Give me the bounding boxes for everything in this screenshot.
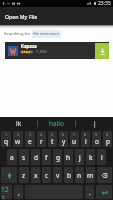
staticText: j: [79, 153, 81, 162]
staticText: 7: [73, 132, 76, 137]
staticText: ,: [18, 188, 20, 197]
staticText: h: [66, 153, 71, 162]
staticText: t: [51, 137, 54, 146]
staticText: l: [101, 153, 103, 162]
staticText: Open My File: [5, 13, 38, 20]
staticText: z: [22, 171, 26, 180]
staticText: m: [87, 171, 94, 180]
staticText: 123: [1, 185, 12, 199]
staticText: 3: [29, 132, 32, 137]
button[interactable]: h: [64, 149, 73, 165]
staticText: r: [40, 137, 43, 146]
button[interactable]: 4: [37, 131, 46, 147]
staticText: n: [77, 171, 82, 180]
button[interactable]: Enter: [96, 185, 112, 199]
button[interactable]: 7: [70, 131, 79, 147]
button[interactable]: Shift: [1, 167, 17, 183]
staticText: o: [95, 137, 99, 146]
staticText: .: [89, 188, 91, 197]
button[interactable]: a: [7, 149, 17, 165]
staticText: v: [56, 171, 60, 180]
button[interactable]: 9: [92, 131, 101, 147]
button[interactable]: f: [42, 149, 51, 165]
staticText: 1: [5, 132, 8, 137]
staticText: (1,096): [36, 49, 47, 54]
staticText: c: [45, 171, 49, 180]
staticText: 6: [62, 132, 65, 137]
button[interactable]: v: [53, 167, 62, 183]
button[interactable]: 0: [103, 131, 112, 147]
button[interactable]: Install: [95, 43, 109, 59]
staticText: d: [34, 153, 38, 162]
button[interactable]: z: [19, 167, 29, 183]
staticText: 9: [95, 132, 98, 137]
button[interactable]: 3: [25, 131, 35, 147]
button[interactable]: s: [19, 149, 29, 165]
staticText: b: [67, 171, 71, 180]
button[interactable]: |: [76, 117, 113, 130]
staticText: x: [34, 171, 38, 180]
button[interactable]: j: [75, 149, 84, 165]
staticText: Searching for: [4, 31, 32, 37]
staticText: hallo: [49, 119, 64, 128]
staticText: 4: [40, 132, 43, 137]
button[interactable]: .: [85, 185, 94, 199]
button[interactable]: c: [42, 167, 51, 183]
staticText: g: [56, 153, 60, 162]
staticText: u: [72, 137, 77, 146]
staticText: a: [10, 153, 14, 162]
staticText: w: [15, 137, 21, 146]
staticText: file extension: [33, 31, 60, 37]
staticText: ik: [16, 119, 22, 128]
button[interactable]: l: [97, 149, 106, 165]
staticText: |: [93, 119, 97, 128]
button[interactable]: 2: [13, 131, 23, 147]
button[interactable]: 1: [1, 131, 11, 147]
button[interactable]: hallo: [38, 117, 75, 130]
button[interactable]: 8: [81, 131, 90, 147]
staticText: s: [22, 153, 26, 162]
staticText: e: [28, 137, 32, 146]
button[interactable]: 5: [48, 131, 57, 147]
button[interactable]: ,: [14, 185, 23, 199]
button[interactable]: x: [31, 167, 40, 183]
button[interactable]: Backspace: [97, 167, 112, 183]
button[interactable]: 6: [59, 131, 68, 147]
staticText: k: [89, 153, 93, 162]
staticText: i: [85, 137, 87, 146]
button[interactable]: b: [64, 167, 73, 183]
staticText: 23:35: [98, 0, 111, 7]
button[interactable]: m: [86, 167, 95, 183]
button[interactable]: d: [31, 149, 40, 165]
staticText: 2: [17, 132, 20, 137]
staticText: 8: [84, 132, 87, 137]
staticText: y: [62, 137, 66, 146]
staticText: q: [4, 137, 8, 146]
button[interactable]: g: [53, 149, 62, 165]
staticText: 5: [51, 132, 54, 137]
staticText: Kapaza: [21, 43, 37, 49]
button[interactable]: ik: [0, 117, 37, 130]
button[interactable]: 123: [1, 185, 12, 199]
button[interactable]: n: [75, 167, 84, 183]
button[interactable]: k: [86, 149, 95, 165]
staticText: 0: [106, 132, 109, 137]
staticText: p: [106, 137, 110, 146]
staticText: f: [45, 153, 48, 162]
